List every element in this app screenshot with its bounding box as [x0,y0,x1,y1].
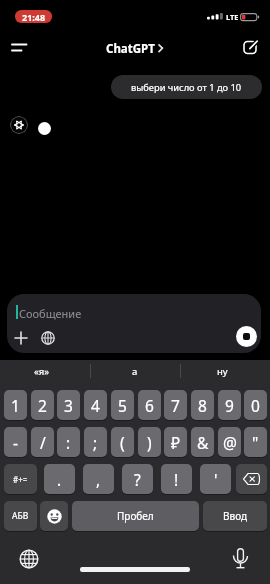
staticText: 9 [225,395,234,416]
button[interactable] [40,501,68,531]
staticText: / [40,432,46,453]
button[interactable]: #+= [4,464,37,494]
staticText: ? [134,469,141,490]
staticText: , [96,469,101,490]
button[interactable]: выбери число от 1 до 10 [111,75,262,99]
button[interactable]: ну [192,361,252,381]
button[interactable]: 6 [138,390,161,420]
button[interactable]: 21:48 [15,10,52,23]
button[interactable]: ( [111,427,134,457]
button[interactable]: ; [84,427,107,457]
staticText: Ввод [223,509,248,523]
button[interactable]: & [191,427,214,457]
staticText: Сообщение [19,306,82,321]
staticText: #+= [13,474,28,485]
staticText: ) [147,432,152,453]
staticText: : [66,432,71,453]
button[interactable]: ChatGPT [0,41,270,55]
staticText: ну [217,365,228,378]
staticText: ₽ [171,432,181,453]
staticText: 3 [64,395,73,416]
button[interactable]: , [83,464,114,494]
button[interactable]: Пробел [72,501,199,531]
button[interactable]: 8 [191,390,214,420]
staticText: Пробел [117,509,154,523]
button[interactable] [232,548,249,571]
button[interactable]: Сообщение [7,294,261,353]
staticText: 21:48 [22,11,46,23]
staticText: . [57,469,62,490]
staticText: & [197,432,209,453]
button[interactable]: 3 [57,390,80,420]
button[interactable] [14,331,28,345]
button[interactable] [8,38,32,58]
button[interactable]: @ [218,427,241,457]
staticText: 7 [171,395,180,416]
button[interactable]: Ввод [203,501,267,531]
staticText: @ [223,432,237,453]
staticText: а [132,365,138,378]
button[interactable]: ? [122,464,153,494]
button[interactable] [19,549,39,569]
staticText: 0 [251,395,260,416]
button[interactable] [41,331,55,345]
button[interactable] [236,464,267,494]
staticText: 1 [11,395,20,416]
button[interactable]: 7 [164,390,187,420]
button[interactable]: 5 [111,390,134,420]
staticText: выбери число от 1 до 10 [131,81,242,94]
staticText: 4 [91,395,100,416]
staticText: 5 [118,395,127,416]
button[interactable]: : [57,427,80,457]
button[interactable]: ' [200,464,231,494]
staticText: ChatGPT [106,41,155,55]
button[interactable]: 0 [244,390,267,420]
button[interactable]: 9 [218,390,241,420]
staticText: " [252,432,259,453]
button[interactable]: а [105,361,165,381]
button[interactable] [240,37,261,57]
button[interactable]: - [4,427,27,457]
staticText: 6 [145,395,154,416]
button[interactable]: АБВ [4,501,37,531]
button[interactable]: 1 [4,390,27,420]
staticText: 2 [38,395,47,416]
staticText: АБВ [12,510,29,522]
staticText: 8 [198,395,207,416]
staticText: ' [214,469,218,490]
button[interactable]: 4 [84,390,107,420]
staticText: ; [93,432,98,453]
button[interactable]: ) [138,427,161,457]
button[interactable]: ₽ [164,427,187,457]
button[interactable]: ! [161,464,192,494]
button[interactable] [236,326,257,347]
button[interactable]: «я» [12,361,72,381]
staticText: ! [174,469,179,490]
staticText: - [13,432,18,453]
button[interactable]: / [31,427,54,457]
button[interactable]: 2 [31,390,54,420]
button[interactable]: " [244,427,267,457]
staticText: LTE [226,12,239,22]
button[interactable]: . [44,464,75,494]
staticText: «я» [34,365,50,378]
staticText: ( [120,432,125,453]
